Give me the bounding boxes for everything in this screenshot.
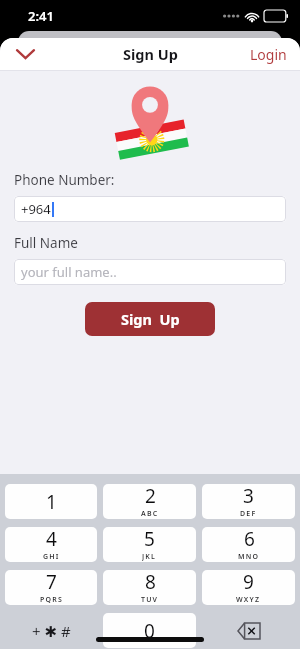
button[interactable]: Backspace: [202, 613, 295, 648]
button[interactable]: 4: [5, 527, 97, 562]
button[interactable]: Collapse: [9, 40, 41, 68]
staticText: 4: [46, 527, 57, 552]
staticText: 9: [243, 570, 254, 595]
button[interactable]: 7: [5, 570, 97, 605]
staticText: TUV: [141, 595, 159, 604]
button[interactable]: 8: [103, 570, 196, 605]
staticText: 1: [46, 489, 57, 515]
staticText: +964: [21, 200, 51, 218]
staticText: 8: [145, 570, 156, 595]
staticText: 7: [46, 570, 57, 595]
staticText: + ✱ #: [32, 621, 71, 641]
button[interactable]: your full name..: [14, 259, 286, 285]
button[interactable]: Sign Up: [85, 302, 215, 336]
button[interactable]: 5: [103, 527, 196, 562]
button[interactable]: 3: [202, 484, 295, 519]
staticText: Sign Up: [121, 309, 180, 329]
staticText: 2: [145, 484, 156, 509]
button[interactable]: 1: [5, 484, 97, 519]
staticText: 6: [244, 527, 255, 552]
button[interactable]: 9: [202, 570, 295, 605]
button[interactable]: Login: [250, 45, 287, 64]
button[interactable]: + ✱ #: [5, 613, 97, 648]
staticText: Phone Number:: [14, 171, 115, 189]
staticText: GHI: [43, 552, 60, 561]
staticText: PQRS: [40, 595, 63, 604]
staticText: DEF: [240, 509, 257, 518]
staticText: 2:41: [28, 7, 54, 25]
staticText: 5: [144, 527, 155, 552]
staticText: MNO: [238, 552, 260, 561]
staticText: Full Name: [14, 234, 78, 252]
staticText: your full name..: [21, 263, 117, 281]
staticText: JKL: [142, 552, 157, 561]
button[interactable]: 6: [202, 527, 295, 562]
staticText: WXYZ: [236, 595, 261, 604]
button[interactable]: Sign Up: [123, 44, 178, 64]
button[interactable]: +964: [14, 196, 286, 222]
staticText: ABC: [141, 509, 159, 518]
staticText: 0: [144, 618, 155, 644]
button[interactable]: 0: [103, 613, 196, 648]
staticText: 3: [243, 484, 254, 509]
button[interactable]: 2: [103, 484, 196, 519]
